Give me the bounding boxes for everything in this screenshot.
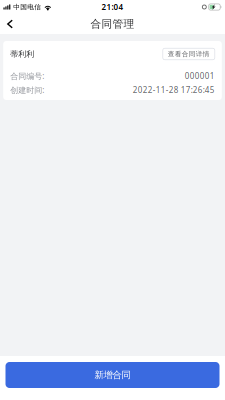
staticText: 000001 <box>185 71 215 81</box>
staticText: 创建时间: <box>10 85 44 95</box>
staticText: 21:04 <box>101 2 123 12</box>
button[interactable]: 新增合同 <box>5 362 219 388</box>
staticText: 蒂利利 <box>10 49 34 59</box>
staticText: 合同管理 <box>90 17 134 30</box>
staticText: 新增合同 <box>94 369 130 381</box>
button[interactable]: Back <box>0 14 20 34</box>
staticText: 查看合同详情 <box>168 50 210 58</box>
staticText: 2022-11-28 17:26:45 <box>133 85 215 95</box>
button[interactable]: 查看合同详情 <box>163 48 215 60</box>
staticText: 合同编号: <box>10 71 44 81</box>
staticText: 中国电信 <box>13 3 41 11</box>
